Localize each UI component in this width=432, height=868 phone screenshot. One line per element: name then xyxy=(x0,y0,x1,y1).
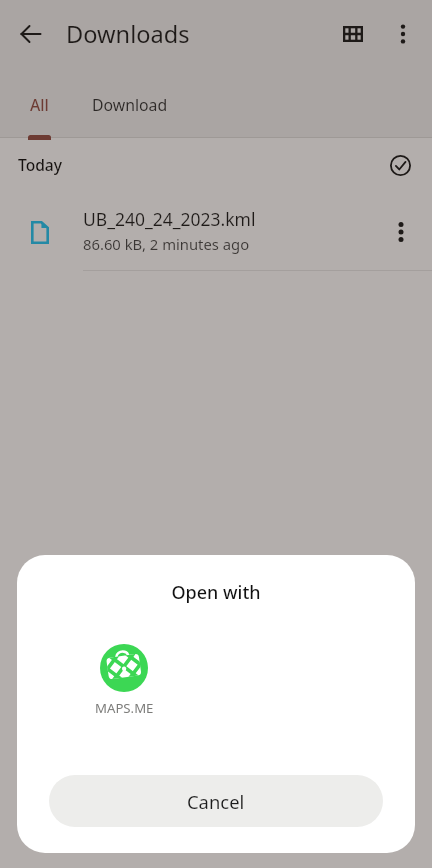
staticText: Open with xyxy=(17,580,415,605)
staticText: Today xyxy=(18,154,63,175)
staticText: Downloads xyxy=(66,18,190,50)
button[interactable]: File options xyxy=(370,190,432,270)
button[interactable]: All xyxy=(0,68,79,138)
staticText: UB_240_24_2023.kml xyxy=(83,207,256,231)
staticText: Download xyxy=(92,94,168,116)
staticText: 86.60 kB, 2 minutes ago xyxy=(83,234,250,254)
button[interactable]: Download xyxy=(79,68,181,138)
button[interactable]: More options xyxy=(379,10,427,58)
button[interactable]: Cancel xyxy=(49,775,383,827)
staticText: All xyxy=(30,94,49,116)
button[interactable]: UB_240_24_2023.kml xyxy=(0,190,432,270)
button[interactable]: MAPS.ME xyxy=(91,644,157,717)
staticText: MAPS.ME xyxy=(95,699,154,717)
button[interactable]: Select all xyxy=(383,148,417,182)
button[interactable]: Grid view xyxy=(329,10,377,58)
button[interactable]: Back xyxy=(6,10,54,58)
staticText: Cancel xyxy=(187,789,245,814)
